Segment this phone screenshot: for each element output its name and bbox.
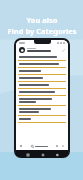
button[interactable]: Filter	[55, 144, 59, 148]
button[interactable]: Home	[40, 152, 45, 157]
staticText: You also	[26, 15, 58, 25]
button[interactable]	[16, 89, 68, 96]
button[interactable]	[16, 116, 68, 123]
button[interactable]	[16, 106, 68, 116]
button[interactable]: Edit	[61, 48, 65, 52]
button[interactable]	[16, 75, 68, 82]
button[interactable]: Download	[61, 144, 65, 148]
button[interactable]	[16, 54, 68, 61]
button[interactable]	[16, 82, 68, 89]
button[interactable]	[16, 96, 68, 106]
button[interactable]	[16, 68, 68, 75]
button[interactable]	[16, 61, 68, 68]
button[interactable]: Search	[31, 145, 48, 148]
button[interactable]: Back	[54, 152, 59, 157]
staticText: Find by Categories	[7, 26, 77, 36]
button[interactable]: Grid view	[19, 144, 23, 148]
button[interactable]: Edit	[16, 45, 68, 54]
button[interactable]: Recents	[25, 152, 30, 157]
